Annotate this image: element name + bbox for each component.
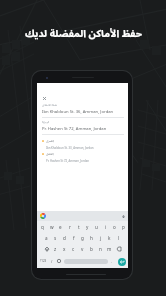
staticText: العمل — [46, 151, 54, 158]
staticText: a — [45, 235, 48, 241]
staticText: z — [54, 246, 57, 252]
button[interactable]: h — [87, 233, 96, 243]
button[interactable]: o — [110, 222, 119, 232]
staticText: Pr. Hashen St 72, Amman, Jordan — [46, 159, 89, 163]
button[interactable]: x — [60, 244, 69, 254]
staticText: Pr. Hashen St 72, Amman, Jordan — [42, 126, 107, 132]
button[interactable]: r — [65, 222, 74, 232]
button[interactable]: Space — [64, 259, 108, 264]
staticText: y — [86, 224, 89, 230]
staticText: m — [107, 246, 112, 252]
staticText: حفظ الأماكن المفضلة لديك — [25, 23, 142, 44]
staticText: / — [51, 259, 53, 264]
staticText: r — [69, 224, 71, 230]
staticText: t — [78, 224, 80, 230]
button[interactable]: نقطة الانطلاق — [42, 102, 124, 118]
button[interactable]: q — [38, 222, 47, 232]
staticText: u — [95, 224, 98, 230]
staticText: w — [50, 224, 54, 230]
button[interactable]: b — [87, 244, 96, 254]
staticText: d — [63, 235, 66, 241]
button[interactable]: c — [69, 244, 78, 254]
staticText: e — [59, 224, 62, 230]
button[interactable]: y — [83, 222, 92, 232]
button[interactable]: المنزل — [41, 138, 124, 150]
staticText: ?123 — [40, 259, 47, 263]
button[interactable]: g — [78, 233, 87, 243]
button[interactable]: k — [105, 233, 114, 243]
button[interactable]: e — [56, 222, 65, 232]
button[interactable]: f — [69, 233, 78, 243]
staticText: p — [122, 224, 125, 230]
button[interactable]: Emoji — [56, 256, 62, 266]
button[interactable]: Search — [118, 258, 126, 266]
staticText: s — [54, 235, 57, 241]
button[interactable]: i — [101, 222, 110, 232]
staticText: g — [81, 235, 84, 241]
staticText: h — [90, 235, 93, 241]
button[interactable]: s — [51, 233, 60, 243]
button[interactable]: ?123 — [38, 256, 48, 266]
staticText: i — [105, 224, 107, 230]
staticText: c — [72, 246, 75, 252]
button[interactable]: d — [60, 233, 69, 243]
button[interactable]: m — [105, 244, 114, 254]
button[interactable]: j — [96, 233, 105, 243]
staticText: o — [113, 224, 116, 230]
button[interactable]: p — [119, 222, 128, 232]
staticText: f — [73, 235, 75, 241]
staticText: Ibn Khaldoun St. 36, Amman, Jordan — [42, 109, 114, 115]
button[interactable]: w — [47, 222, 56, 232]
staticText: x — [63, 246, 66, 252]
button[interactable]: u — [92, 222, 101, 232]
button[interactable]: z — [51, 244, 60, 254]
button[interactable]: a — [42, 233, 51, 243]
button[interactable]: Backspace — [114, 244, 123, 254]
button[interactable]: More options — [121, 214, 125, 218]
staticText: نقطة الانطلاق — [42, 102, 58, 108]
staticText: v — [81, 246, 84, 252]
button[interactable]: . — [109, 256, 115, 266]
staticText: . — [111, 259, 113, 264]
staticText: الوجهة — [42, 119, 50, 125]
staticText: Ibn Khaldoun St. 33, Amman, Jordan — [46, 146, 94, 150]
staticText: n — [99, 246, 102, 252]
button[interactable]: الوجهة — [42, 119, 124, 135]
staticText: k — [108, 235, 111, 241]
button[interactable]: / — [49, 256, 55, 266]
staticText: q — [41, 224, 44, 230]
button[interactable]: v — [78, 244, 87, 254]
button[interactable]: t — [74, 222, 83, 232]
staticText: l — [118, 235, 120, 241]
staticText: المنزل — [46, 138, 55, 145]
staticText: j — [100, 235, 102, 241]
button[interactable]: Close — [40, 94, 49, 103]
button[interactable]: n — [96, 244, 105, 254]
button[interactable]: العمل — [41, 151, 124, 163]
button[interactable]: Shift — [42, 244, 51, 254]
button[interactable]: l — [114, 233, 123, 243]
staticText: b — [90, 246, 93, 252]
